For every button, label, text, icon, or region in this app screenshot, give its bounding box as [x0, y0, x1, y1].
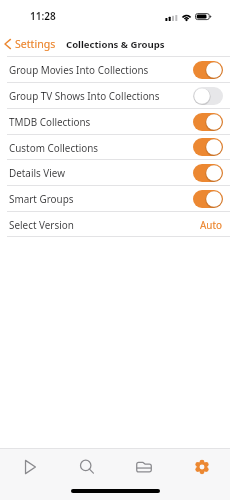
- staticText: Auto: [200, 218, 222, 231]
- staticText: Custom Collections: [9, 141, 192, 154]
- staticText: 11:28: [30, 9, 56, 23]
- button[interactable]: On: [193, 113, 223, 131]
- staticText: Collections & Groups: [66, 38, 165, 51]
- staticText: Settings: [15, 37, 56, 51]
- button[interactable]: Details View: [0, 160, 230, 185]
- button[interactable]: On: [193, 190, 223, 208]
- button[interactable]: Custom Collections: [0, 135, 230, 159]
- button[interactable]: Play: [0, 451, 57, 483]
- button[interactable]: On: [193, 138, 223, 156]
- button[interactable]: On: [193, 164, 223, 182]
- staticText: Select Version: [9, 218, 200, 231]
- button[interactable]: Search: [57, 451, 114, 483]
- staticText: Group Movies Into Collections: [9, 63, 192, 76]
- button[interactable]: Group Movies Into Collections: [0, 57, 230, 82]
- button[interactable]: On: [193, 61, 223, 79]
- button[interactable]: Smart Groups: [0, 186, 230, 211]
- button[interactable]: Library: [114, 451, 172, 483]
- button[interactable]: Settings: [172, 451, 230, 483]
- staticText: Smart Groups: [9, 192, 192, 205]
- button[interactable]: Group TV Shows Into Collections: [0, 83, 230, 108]
- button[interactable]: Settings: [0, 33, 64, 53]
- button[interactable]: Off: [193, 87, 223, 105]
- button[interactable]: TMDB Collections: [0, 109, 230, 134]
- button[interactable]: Select Version: [0, 212, 230, 236]
- staticText: Group TV Shows Into Collections: [9, 89, 192, 102]
- staticText: TMDB Collections: [9, 115, 192, 128]
- staticText: Details View: [9, 166, 192, 179]
